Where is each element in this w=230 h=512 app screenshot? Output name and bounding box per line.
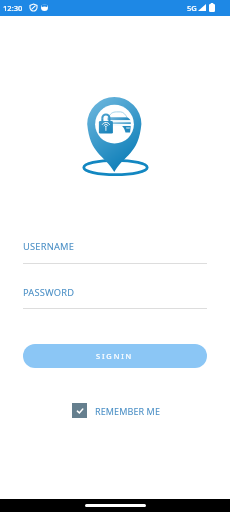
staticText: SIGNIN: [96, 351, 134, 361]
staticText: REMEMBER ME: [95, 405, 160, 417]
staticText: 12:30: [3, 3, 23, 13]
staticText: USERNAME: [23, 240, 75, 253]
staticText: PASSWORD: [23, 286, 75, 299]
button[interactable]: REMEMBER ME: [72, 403, 160, 418]
staticText: 5G: [187, 3, 197, 13]
button[interactable]: SIGNIN: [23, 344, 207, 368]
